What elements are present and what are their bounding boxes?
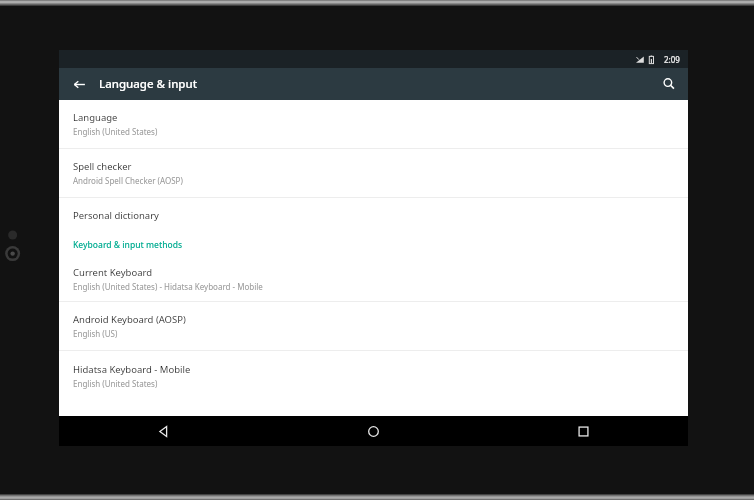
button[interactable]: Android Keyboard (AOSP) xyxy=(59,302,688,351)
staticText: English (US) xyxy=(73,328,118,339)
staticText: Current Keyboard xyxy=(73,266,153,279)
button[interactable]: Back xyxy=(59,416,268,446)
button[interactable]: Language xyxy=(59,100,688,149)
button[interactable]: Current Keyboard xyxy=(59,257,688,302)
staticText: English (United States) - Hidatsa Keyboa… xyxy=(73,281,263,292)
button[interactable]: Home xyxy=(268,416,478,446)
staticText: Hidatsa Keyboard - Mobile xyxy=(73,363,191,376)
button[interactable]: Navigate up xyxy=(59,68,99,100)
staticText: English (United States) xyxy=(73,126,158,137)
staticText: 2:09 xyxy=(664,54,680,65)
button[interactable]: Personal dictionary xyxy=(59,198,688,232)
button[interactable]: Spell checker xyxy=(59,149,688,198)
staticText: Keyboard & input methods xyxy=(73,239,183,251)
staticText: English (United States) xyxy=(73,378,158,389)
button[interactable]: Search xyxy=(650,68,688,100)
staticText: Language & input xyxy=(99,76,198,92)
staticText: Android Keyboard (AOSP) xyxy=(73,313,186,326)
button[interactable]: Recent apps xyxy=(478,416,688,446)
button[interactable]: Hidatsa Keyboard - Mobile xyxy=(59,351,688,400)
staticText: Android Spell Checker (AOSP) xyxy=(73,175,183,186)
staticText: Spell checker xyxy=(73,160,132,173)
staticText: Personal dictionary xyxy=(73,209,159,222)
staticText: Language xyxy=(73,111,118,124)
